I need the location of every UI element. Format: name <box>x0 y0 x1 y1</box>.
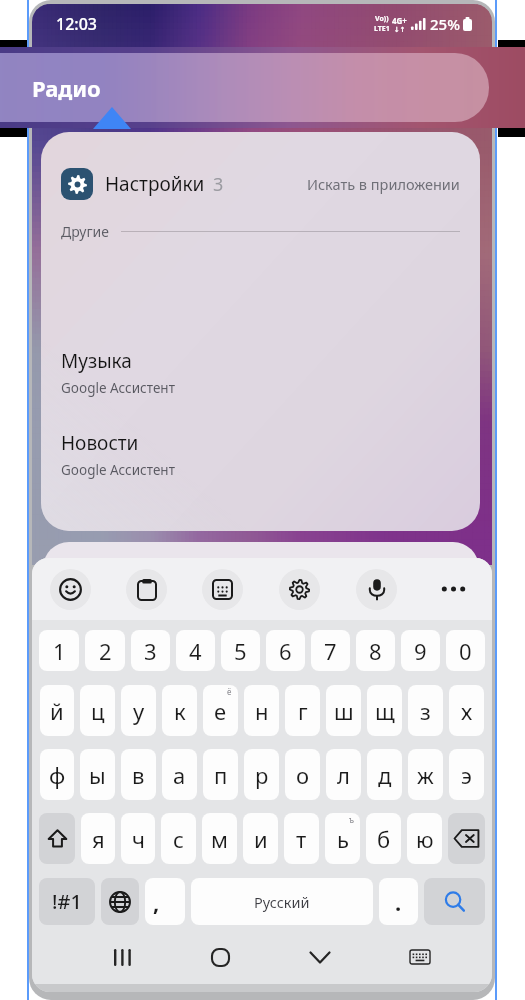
button[interactable]: Keyboard layout <box>370 930 470 984</box>
button[interactable]: к <box>162 685 197 736</box>
button[interactable]: ы <box>80 749 115 800</box>
button[interactable]: Настройки <box>41 162 480 206</box>
staticText: щ <box>375 696 395 726</box>
button[interactable]: л <box>326 749 361 800</box>
button[interactable]: с <box>161 813 196 864</box>
button[interactable]: х <box>449 685 484 736</box>
button[interactable]: Keyboard settings <box>261 558 338 620</box>
staticText: д <box>378 760 392 790</box>
staticText: Русский <box>254 892 310 912</box>
staticText: ё <box>227 686 232 697</box>
staticText: 12:03 <box>56 13 97 35</box>
button[interactable]: ц <box>80 685 115 736</box>
button[interactable]: э <box>449 749 484 800</box>
staticText: я <box>92 824 105 854</box>
staticText: с <box>173 824 184 854</box>
staticText: ж <box>417 760 434 790</box>
button[interactable]: 3 <box>131 630 170 671</box>
staticText: Искать в приложении <box>307 174 460 194</box>
button[interactable]: в <box>121 749 156 800</box>
button[interactable]: 2 <box>85 630 125 671</box>
button[interactable]: б <box>366 813 401 864</box>
staticText: 6 <box>279 636 292 666</box>
staticText: з <box>420 696 431 726</box>
button[interactable]: м <box>202 813 237 864</box>
staticText: 0 <box>459 636 472 666</box>
button[interactable]: ь <box>325 813 360 864</box>
button[interactable]: т <box>284 813 319 864</box>
button[interactable]: Text editing <box>184 558 261 620</box>
button[interactable]: , <box>145 878 185 925</box>
staticText: 3 <box>213 172 224 197</box>
button[interactable]: 0 <box>446 630 485 671</box>
button[interactable]: ф <box>40 749 74 800</box>
button[interactable]: е <box>203 685 238 736</box>
button[interactable]: й <box>40 685 74 736</box>
staticText: Музыка <box>61 348 132 374</box>
staticText: 8 <box>369 636 382 666</box>
staticText: б <box>377 824 391 854</box>
button[interactable]: р <box>244 749 279 800</box>
staticText: 2 <box>99 636 112 666</box>
button[interactable]: 5 <box>221 630 260 671</box>
button[interactable]: Hide keyboard <box>270 930 370 984</box>
button[interactable]: Recent apps <box>72 930 171 984</box>
staticText: у <box>133 696 145 726</box>
button[interactable]: я <box>81 813 115 864</box>
button[interactable]: и <box>243 813 278 864</box>
staticText: г <box>298 696 308 726</box>
button[interactable]: г <box>285 685 320 736</box>
staticText: а <box>173 760 186 790</box>
staticText: и <box>254 824 268 854</box>
staticText: LTE1 <box>374 24 390 34</box>
button[interactable]: 7 <box>311 630 350 671</box>
button[interactable]: 8 <box>356 630 395 671</box>
button[interactable]: п <box>203 749 238 800</box>
button[interactable]: !#1 <box>39 878 95 925</box>
staticText: в <box>132 760 145 790</box>
staticText: Vo)) <box>375 14 389 24</box>
button[interactable]: Музыка <box>41 348 480 397</box>
staticText: 7 <box>324 636 337 666</box>
button[interactable]: Радио <box>0 53 489 122</box>
button[interactable]: 9 <box>401 630 440 671</box>
button[interactable]: з <box>408 685 443 736</box>
button[interactable]: 6 <box>266 630 305 671</box>
button[interactable]: Русский <box>191 878 373 925</box>
button[interactable]: Backspace <box>448 813 485 864</box>
button[interactable]: ю <box>407 813 442 864</box>
staticText: е <box>214 696 227 726</box>
staticText: ю <box>416 824 434 854</box>
button[interactable]: Change language <box>101 878 139 925</box>
button[interactable]: 4 <box>176 630 215 671</box>
button[interactable]: More options <box>415 558 492 620</box>
button[interactable]: у <box>121 685 156 736</box>
button[interactable]: д <box>367 749 402 800</box>
button[interactable]: Новости <box>41 430 480 479</box>
staticText: х <box>461 696 473 726</box>
button[interactable]: Clipboard <box>108 558 184 620</box>
button[interactable]: ж <box>408 749 443 800</box>
button[interactable]: Home <box>171 930 270 984</box>
staticText: н <box>255 696 269 726</box>
button[interactable]: 1 <box>39 630 79 671</box>
button[interactable]: н <box>244 685 279 736</box>
staticText: Новости <box>61 430 139 456</box>
staticText: 4G+ <box>392 15 407 26</box>
button[interactable]: щ <box>367 685 402 736</box>
staticText: й <box>50 696 64 726</box>
staticText: ы <box>89 760 106 790</box>
staticText: т <box>296 824 307 854</box>
button[interactable]: о <box>285 749 320 800</box>
staticText: Google Ассистент <box>61 379 175 397</box>
button[interactable]: Voice input <box>338 558 415 620</box>
button[interactable]: ч <box>121 813 155 864</box>
button[interactable]: Emoji <box>32 558 108 620</box>
button[interactable]: ш <box>326 685 361 736</box>
button[interactable]: Search <box>424 878 485 925</box>
button[interactable]: Shift <box>39 813 75 864</box>
button[interactable]: а <box>162 749 197 800</box>
staticText: 9 <box>414 636 427 666</box>
staticText: ъ <box>349 814 354 825</box>
button[interactable]: . <box>379 878 418 925</box>
